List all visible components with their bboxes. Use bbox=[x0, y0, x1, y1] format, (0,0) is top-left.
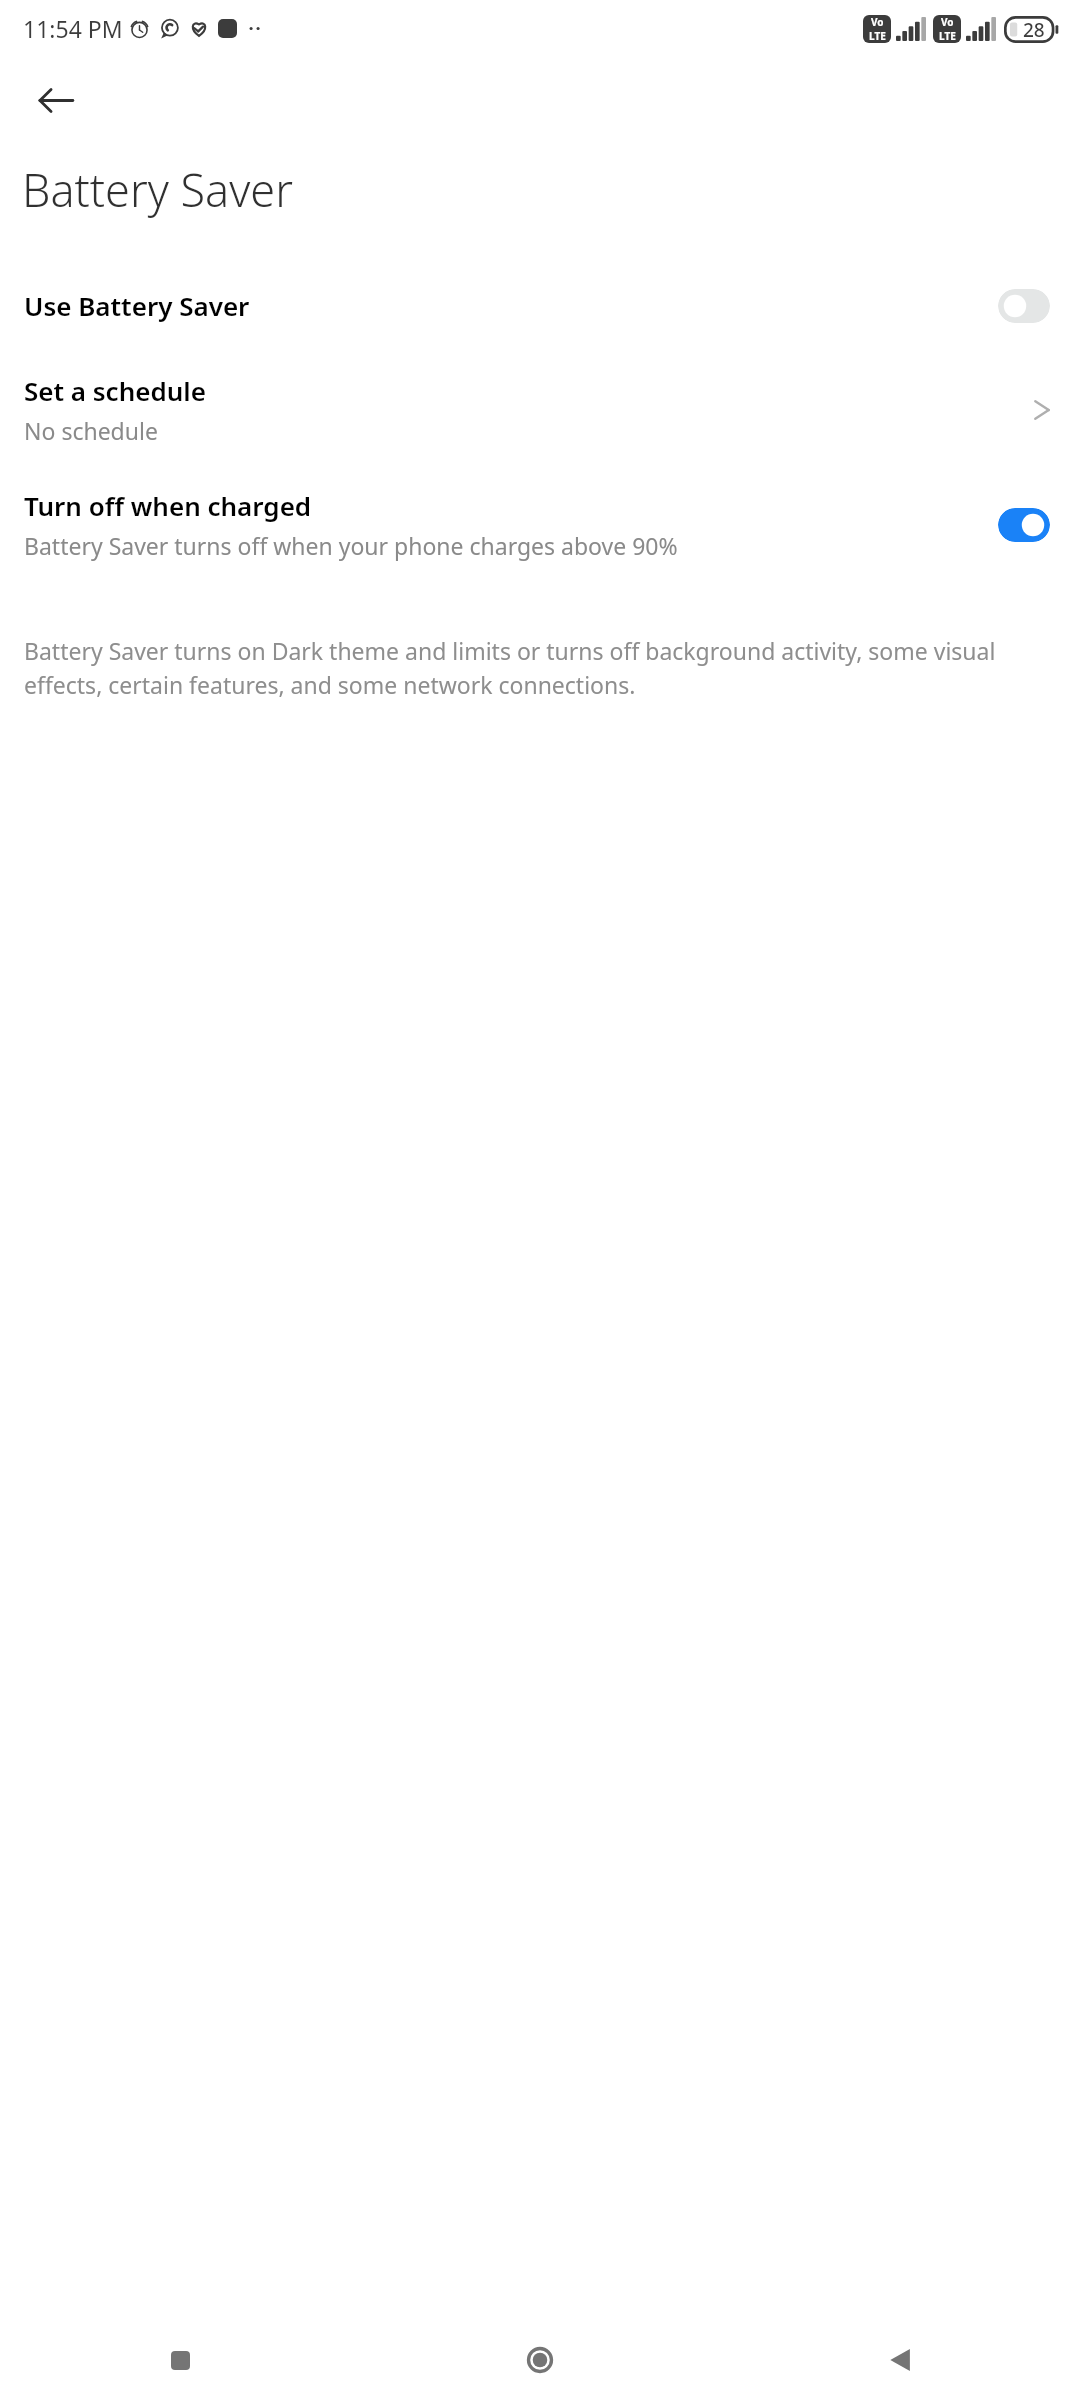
button[interactable]: Back bbox=[22, 67, 88, 133]
staticText: Vo bbox=[871, 15, 884, 29]
button[interactable]: Recent apps bbox=[0, 2312, 360, 2408]
staticText: LTE bbox=[869, 29, 886, 43]
staticText: Turn off when charged bbox=[24, 488, 312, 523]
staticText: Use Battery Saver bbox=[24, 288, 250, 323]
staticText: No schedule bbox=[24, 415, 158, 446]
button[interactable]: Back bbox=[720, 2312, 1080, 2408]
staticText: 11:54 PM bbox=[23, 13, 123, 44]
button[interactable]: Use Battery Saver bbox=[0, 284, 1080, 327]
button[interactable]: Turn off when charged bbox=[0, 484, 1080, 565]
button[interactable]: Set a schedule bbox=[0, 369, 1080, 450]
staticText: Vo bbox=[941, 15, 954, 29]
staticText: Battery Saver turns on Dark theme and li… bbox=[24, 635, 1054, 700]
staticText: 28 bbox=[1023, 17, 1045, 43]
button[interactable]: Toggle on bbox=[998, 508, 1050, 542]
staticText: Battery Saver bbox=[22, 159, 293, 220]
staticText: Battery Saver turns off when your phone … bbox=[24, 530, 678, 561]
staticText: Set a schedule bbox=[24, 373, 206, 408]
button[interactable]: Home bbox=[360, 2312, 720, 2408]
staticText: LTE bbox=[939, 29, 956, 43]
button[interactable]: Toggle off bbox=[998, 289, 1050, 323]
